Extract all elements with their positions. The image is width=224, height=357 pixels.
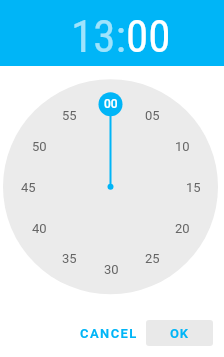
- button[interactable]: 40: [25, 218, 53, 238]
- button[interactable]: 05: [138, 105, 166, 125]
- button[interactable]: 20: [168, 218, 196, 238]
- button[interactable]: 35: [55, 248, 83, 268]
- button[interactable]: 10: [168, 136, 196, 156]
- staticText: 40: [32, 221, 47, 236]
- button[interactable]: 25: [138, 248, 166, 268]
- staticText: OK: [170, 326, 189, 341]
- staticText: 55: [62, 108, 77, 123]
- staticText: 25: [145, 251, 160, 266]
- button[interactable]: 30: [97, 259, 125, 279]
- staticText: 00: [104, 97, 118, 111]
- button[interactable]: 45: [14, 177, 42, 197]
- staticText: 45: [21, 180, 36, 195]
- staticText: 15: [186, 180, 201, 195]
- staticText: 13:: [71, 10, 126, 63]
- staticText: 20: [175, 221, 190, 236]
- staticText: 50: [32, 139, 47, 154]
- button[interactable]: 15: [179, 177, 207, 197]
- staticText: CANCEL: [80, 326, 138, 341]
- button[interactable]: 55: [55, 105, 83, 125]
- staticText: 35: [62, 251, 77, 266]
- staticText: 30: [104, 262, 119, 277]
- button[interactable]: CANCEL: [77, 320, 141, 346]
- button[interactable]: 50: [25, 136, 53, 156]
- staticText: 10: [175, 139, 190, 154]
- button[interactable]: 00: [97, 94, 125, 114]
- staticText: 05: [145, 108, 160, 123]
- staticText: 00: [126, 10, 171, 63]
- button[interactable]: OK: [146, 320, 213, 346]
